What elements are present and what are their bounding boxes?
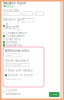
staticText: Evaluation report (3, 1, 26, 5)
button[interactable]: Include in record (5, 73, 42, 77)
button[interactable]: Share with manager (5, 69, 42, 72)
staticText: Reporting window (22, 18, 34, 19)
staticText: Saved correctly (6, 4, 13, 8)
button[interactable]: Leadership (3, 37, 33, 41)
staticText: Confirm submission (6, 89, 21, 96)
staticText: 2024 (23, 13, 27, 15)
button[interactable]: Collaboration (3, 34, 33, 38)
staticText: Q3 (35, 13, 37, 15)
staticText: Collaboration (6, 34, 25, 38)
button[interactable]: Initiative (3, 40, 33, 44)
staticText: Additional notes (5, 49, 29, 52)
staticText: Evaluation mode (3, 18, 25, 21)
staticText: Jan 2024 - Dec 2024 (22, 21, 35, 23)
button[interactable]: Adaptability (3, 44, 33, 47)
staticText: Exceeds expectations (6, 64, 22, 66)
staticText: Submit (52, 94, 56, 95)
staticText: Include in record (8, 73, 33, 77)
staticText: Initiative (6, 40, 18, 44)
staticText: Peer (17, 21, 20, 31)
staticText: Overall assessment (5, 59, 29, 62)
button[interactable]: Confirm submission (3, 89, 33, 96)
staticText: Leadership (6, 37, 21, 41)
staticText: Choose all that apply (3, 28, 16, 30)
button[interactable]: Submit (49, 92, 59, 97)
staticText: Visible to reviewers only (5, 78, 21, 80)
button[interactable]: Peer (15, 21, 23, 31)
staticText: Report type (3, 9, 20, 12)
staticText: Full eval (4, 13, 9, 15)
button[interactable]: Communication (3, 31, 33, 35)
staticText: Review areas (3, 25, 18, 28)
button[interactable]: Self (3, 22, 11, 29)
staticText: Summary (6, 54, 13, 56)
staticText: Communication (6, 31, 27, 35)
staticText: Self (6, 22, 10, 29)
staticText: Share with manager (8, 69, 34, 72)
staticText: Adaptability (6, 44, 22, 47)
